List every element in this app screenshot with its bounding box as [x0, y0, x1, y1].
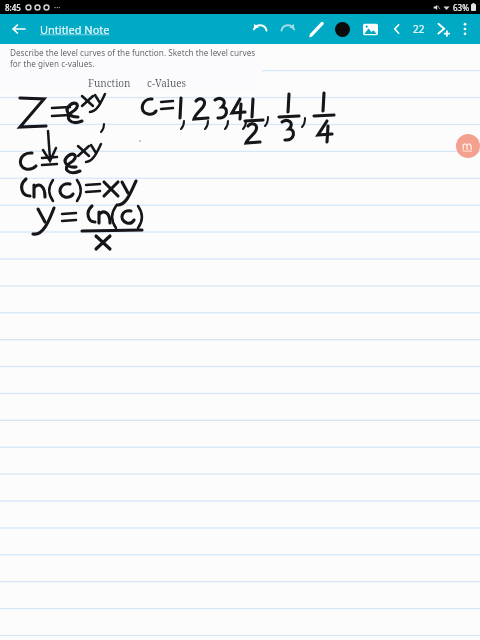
button[interactable]: Ink colour black	[330, 17, 354, 41]
staticText: ···	[54, 2, 61, 13]
staticText: 63%	[453, 2, 469, 13]
button[interactable]: Redo	[276, 17, 300, 41]
button[interactable]: Pen tool	[304, 17, 328, 41]
button[interactable]: Add page	[432, 19, 452, 39]
button[interactable]: Previous page	[388, 20, 406, 38]
staticText: 22	[413, 22, 425, 36]
button[interactable]: Insert image	[358, 17, 382, 41]
staticText: Untitled Note	[40, 22, 110, 37]
staticText: c-Values	[147, 76, 187, 90]
button[interactable]: Untitled Note	[38, 19, 112, 40]
staticText: for the given c-values.	[10, 58, 95, 69]
button[interactable]: Problem statement image	[0, 44, 262, 92]
staticText: Function	[88, 76, 131, 90]
button[interactable]: Back	[8, 18, 30, 40]
staticText: Describe the level curves of the functio…	[10, 47, 256, 58]
button[interactable]: 22	[410, 20, 428, 38]
button[interactable]: More options	[455, 19, 475, 39]
button[interactable]: Undo	[248, 17, 272, 41]
staticText: 8:45	[5, 2, 21, 13]
